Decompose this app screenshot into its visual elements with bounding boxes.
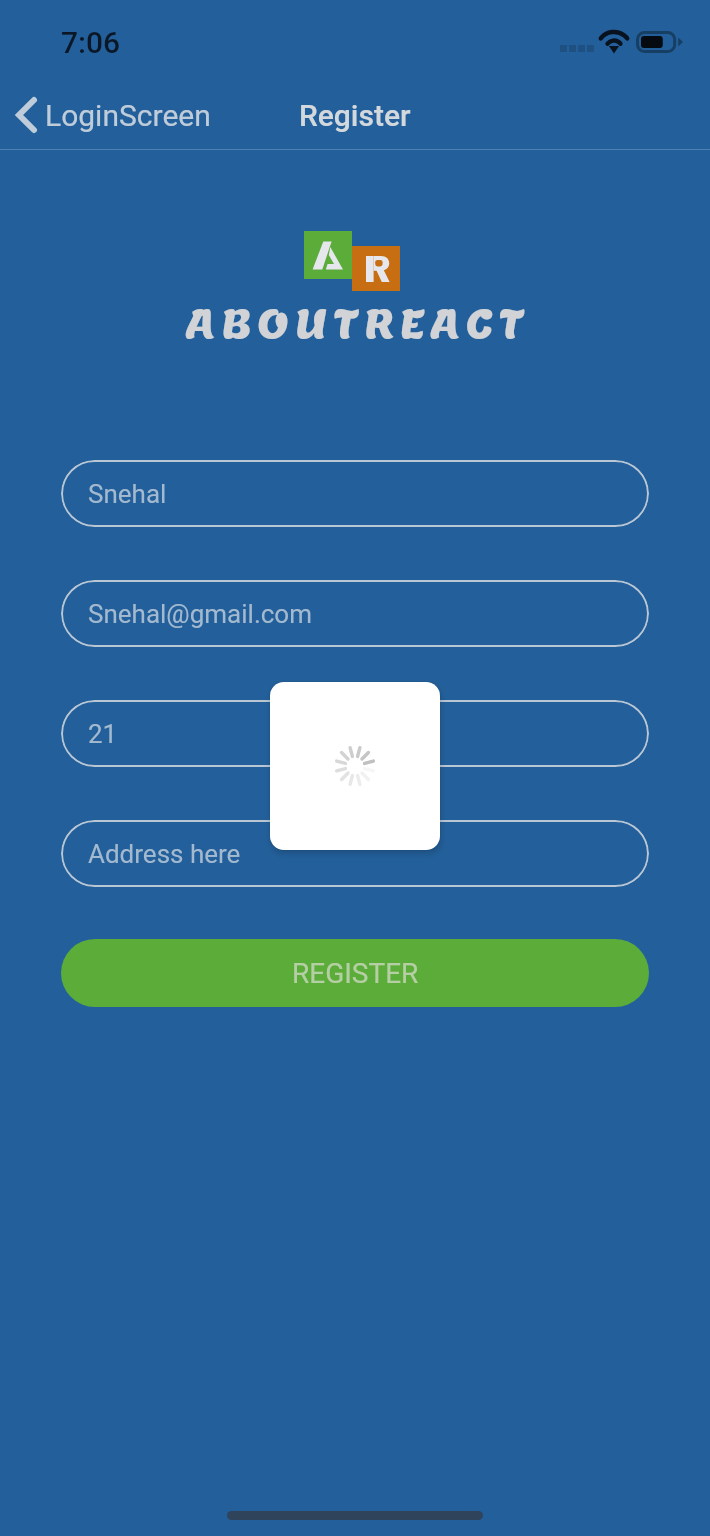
staticText: Snehal@gmail.com xyxy=(88,599,312,629)
staticText: Address here xyxy=(88,839,241,869)
button[interactable]: Snehal@gmail.com xyxy=(61,580,649,647)
staticText: LoginScreen xyxy=(45,98,211,133)
button[interactable]: Snehal xyxy=(61,460,649,527)
staticText: Snehal xyxy=(88,479,167,509)
staticText: 7:06 xyxy=(61,25,121,60)
button[interactable]: Address here xyxy=(61,820,649,887)
button[interactable]: 21 xyxy=(61,700,649,767)
button[interactable]: Back to LoginScreen xyxy=(8,91,219,139)
staticText: REGISTER xyxy=(292,957,419,990)
button[interactable]: REGISTER xyxy=(61,939,649,1007)
staticText: 21 xyxy=(88,719,118,749)
staticText: Register xyxy=(299,98,411,133)
staticText: ABOUTREACT xyxy=(186,298,530,349)
